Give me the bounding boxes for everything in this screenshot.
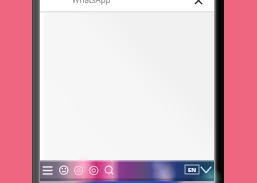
staticText: EN <box>188 166 197 174</box>
button[interactable]: Emoji <box>59 165 69 175</box>
button[interactable]: Menu <box>42 165 53 176</box>
button[interactable]: Stickers <box>74 165 84 175</box>
button[interactable]: WhatsApp <box>40 0 214 11</box>
button[interactable]: Hide keyboard <box>200 165 212 174</box>
button[interactable]: Search <box>104 165 114 175</box>
button[interactable]: Close <box>193 0 204 6</box>
button[interactable]: EN <box>185 165 199 174</box>
staticText: WhatsApp <box>72 0 111 5</box>
button[interactable]: GIF <box>89 165 99 175</box>
